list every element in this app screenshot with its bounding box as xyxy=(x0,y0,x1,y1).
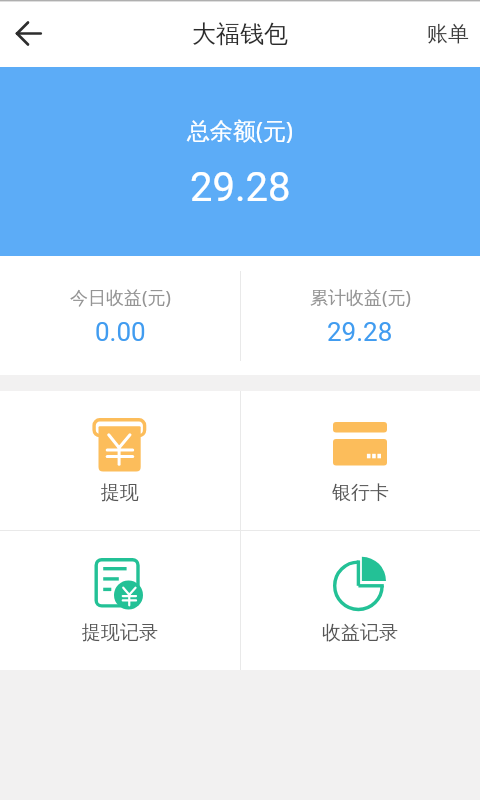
button[interactable]: 累计收益(元) xyxy=(240,256,480,375)
button[interactable]: 银行卡 xyxy=(240,391,480,530)
staticText: 大福钱包 xyxy=(192,19,288,49)
button[interactable]: 账单 xyxy=(411,0,480,67)
staticText: 提现 xyxy=(101,481,139,505)
staticText: 今日收益(元) xyxy=(70,285,171,310)
button[interactable]: 提现 xyxy=(0,391,240,530)
button[interactable]: 今日收益(元) xyxy=(0,256,240,375)
staticText: 银行卡 xyxy=(332,481,389,505)
button[interactable]: 提现记录 xyxy=(0,531,240,670)
button[interactable]: Back xyxy=(0,0,56,67)
staticText: 收益记录 xyxy=(322,621,398,645)
button[interactable]: 收益记录 xyxy=(240,531,480,670)
staticText: 累计收益(元) xyxy=(310,285,411,310)
staticText: 29.28 xyxy=(190,164,291,211)
staticText: 总余额(元) xyxy=(187,114,293,145)
staticText: 账单 xyxy=(427,21,469,47)
staticText: 提现记录 xyxy=(82,621,158,645)
staticText: 29.28 xyxy=(327,317,393,347)
staticText: 0.00 xyxy=(95,317,146,347)
